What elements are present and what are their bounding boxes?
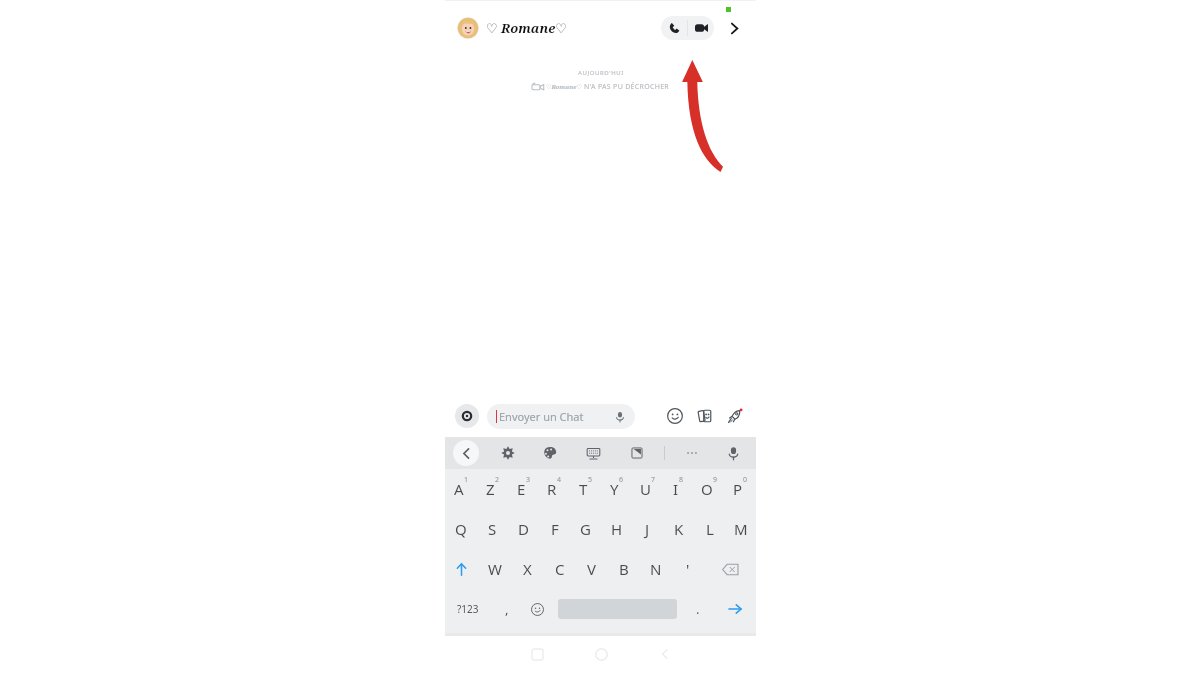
staticText: R [547, 479, 557, 499]
button[interactable]: Emoji [522, 589, 553, 629]
staticText: AUJOURD'HUI [578, 69, 624, 77]
button[interactable]: S [477, 509, 508, 549]
button[interactable]: ♡ Romane♡ [486, 19, 567, 37]
button[interactable]: . [682, 589, 713, 629]
staticText: . [696, 600, 700, 618]
staticText: L [706, 519, 714, 539]
button[interactable]: R [539, 469, 570, 509]
staticText: B [619, 559, 629, 579]
staticText: T [579, 479, 588, 499]
staticText: A [454, 479, 464, 499]
staticText: 6 [619, 475, 624, 485]
button[interactable]: Shift [445, 549, 478, 589]
button[interactable]: I [663, 469, 694, 509]
button[interactable]: Recent apps [520, 637, 554, 671]
button[interactable]: Y [601, 469, 632, 509]
staticText: Y [610, 479, 619, 499]
staticText: I [673, 479, 679, 499]
button[interactable]: L [694, 509, 725, 549]
staticText: O [701, 479, 713, 499]
button[interactable]: Keyboard mode [580, 440, 606, 466]
button[interactable]: Audio call [661, 16, 687, 40]
staticText: Z [486, 479, 495, 499]
button[interactable]: M [725, 509, 756, 549]
button[interactable]: D [508, 509, 539, 549]
button[interactable]: U [632, 469, 663, 509]
button[interactable]: Cameos [694, 405, 716, 427]
button[interactable]: H [601, 509, 632, 549]
button[interactable]: V [576, 549, 608, 589]
button[interactable]: Stickers [664, 405, 686, 427]
button[interactable]: K [663, 509, 694, 549]
staticText: W [488, 559, 502, 579]
staticText: M [734, 519, 748, 539]
button[interactable]: Voice message [610, 407, 630, 427]
button[interactable]: Backspace [704, 549, 756, 589]
button[interactable]: Enter [713, 589, 756, 629]
staticText: 8 [679, 475, 684, 485]
button[interactable]: More options [679, 440, 705, 466]
staticText: 4 [557, 475, 562, 485]
staticText: D [518, 519, 529, 539]
button[interactable]: Z [477, 469, 508, 509]
button[interactable]: N [640, 549, 672, 589]
staticText: 3 [526, 475, 531, 485]
button[interactable]: Envoyer un Chat [487, 404, 635, 429]
staticText: G [580, 519, 591, 539]
button[interactable]: X [511, 549, 544, 589]
button[interactable]: Settings [495, 440, 521, 466]
button[interactable]: , [491, 589, 522, 629]
staticText: Envoyer un Chat [499, 409, 584, 424]
staticText: V [587, 559, 597, 579]
button[interactable]: Home [584, 637, 618, 671]
staticText: 0 [743, 475, 748, 485]
staticText: 7 [651, 475, 656, 485]
staticText: X [523, 559, 532, 579]
staticText: S [488, 519, 497, 539]
staticText: , [505, 600, 509, 618]
staticText: 9 [713, 475, 718, 485]
button[interactable]: C [544, 549, 576, 589]
staticText: P [733, 479, 743, 499]
staticText: J [645, 519, 650, 539]
button[interactable]: Voice input [720, 440, 746, 466]
button[interactable]: More [724, 18, 744, 38]
button[interactable]: T [570, 469, 601, 509]
button[interactable]: Video call [688, 16, 714, 40]
button[interactable]: B [608, 549, 640, 589]
staticText: 1 [464, 475, 469, 485]
button[interactable] [457, 17, 479, 39]
button[interactable]: P [725, 469, 756, 509]
staticText: ♡Romane♡ [546, 83, 582, 91]
button[interactable]: Back [453, 440, 479, 466]
button[interactable]: Q [445, 509, 477, 549]
staticText: ?123 [457, 602, 479, 616]
staticText: N [650, 559, 662, 579]
button[interactable]: O [694, 469, 725, 509]
button[interactable]: Camera [455, 404, 479, 428]
button[interactable]: W [478, 549, 511, 589]
staticText: 5 [588, 475, 593, 485]
button[interactable]: F [539, 509, 570, 549]
staticText: N'A PAS PU DÉCROCHER [584, 82, 669, 92]
button[interactable]: J [632, 509, 663, 549]
button[interactable]: ?123 [445, 589, 491, 629]
button[interactable]: Resize [624, 440, 650, 466]
staticText: H [611, 519, 623, 539]
staticText: ' [686, 559, 690, 579]
staticText: E [517, 479, 526, 499]
staticText: U [640, 479, 651, 499]
staticText: K [674, 519, 684, 539]
button[interactable]: A [445, 469, 477, 509]
staticText: C [555, 559, 565, 579]
button[interactable]: G [570, 509, 601, 549]
staticText: 2 [495, 475, 500, 485]
button[interactable]: Games [724, 405, 746, 427]
staticText: F [551, 519, 559, 539]
button[interactable]: ' [672, 549, 704, 589]
staticText: Q [455, 519, 467, 539]
button[interactable]: E [508, 469, 539, 509]
button[interactable]: Themes [537, 440, 563, 466]
